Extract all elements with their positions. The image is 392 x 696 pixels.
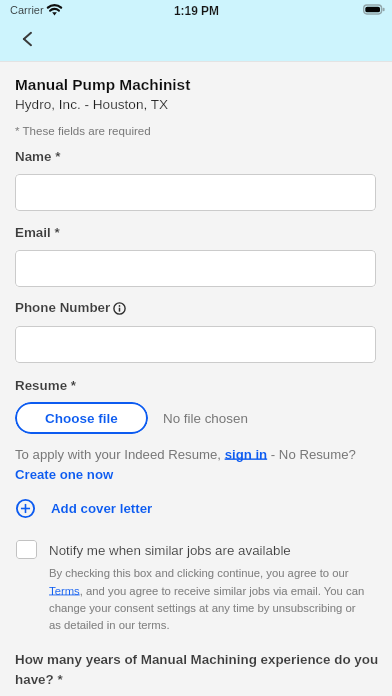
staticText: Email *: [15, 225, 60, 240]
staticText: 1:19 PM: [174, 4, 219, 17]
button[interactable]: Back: [9, 21, 45, 57]
button[interactable]: [15, 326, 376, 363]
staticText: No file chosen: [163, 411, 248, 426]
staticText: By checking this box and clicking contin…: [49, 567, 366, 631]
staticText: Name *: [15, 149, 61, 164]
staticText: To apply with your Indeed Resume, sign i…: [15, 447, 381, 481]
staticText: Manual Pump Machinist: [15, 76, 191, 93]
button[interactable]: [15, 174, 376, 211]
staticText: Carrier: [10, 4, 44, 16]
button[interactable]: Add cover letter: [16, 499, 153, 518]
staticText: How many years of Manual Machining exper…: [15, 652, 381, 687]
button[interactable]: Phone number info: [112, 301, 126, 315]
staticText: Add cover letter: [51, 501, 153, 516]
staticText: * These fields are required: [15, 124, 151, 137]
staticText: Notify me when similar jobs are availabl…: [49, 543, 291, 558]
button[interactable]: [15, 250, 376, 287]
staticText: Phone Number: [15, 300, 111, 315]
staticText: Resume *: [15, 378, 77, 393]
staticText: Hydro, Inc. - Houston, TX: [15, 97, 169, 112]
staticText: Choose file: [45, 411, 118, 426]
button[interactable]: Choose file: [15, 402, 148, 434]
button[interactable]: Notify me when similar jobs are availabl…: [16, 540, 37, 559]
